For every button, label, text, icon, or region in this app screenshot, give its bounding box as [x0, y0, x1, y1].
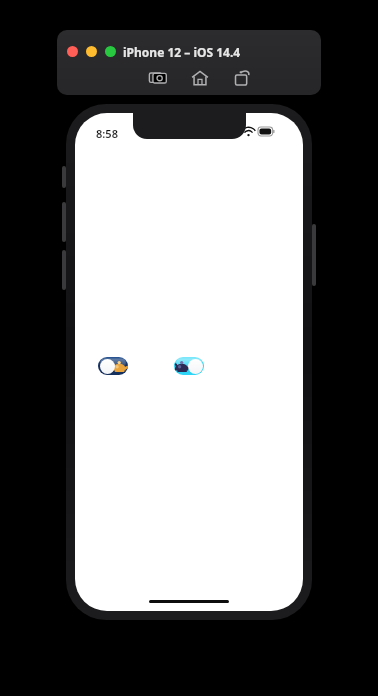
button[interactable]: Home: [189, 67, 211, 89]
button[interactable]: Rotate: [231, 67, 253, 89]
button[interactable]: Side button: [312, 224, 316, 286]
button[interactable]: Screenshot: [147, 67, 169, 89]
button[interactable]: Minimise: [86, 46, 97, 57]
button[interactable]: Volume down: [62, 250, 66, 290]
button[interactable]: Volume up: [62, 202, 66, 242]
button[interactable]: Zoom: [105, 46, 116, 57]
button[interactable]: Close: [67, 46, 78, 57]
staticText: iPhone 12 – iOS 14.4: [123, 44, 241, 60]
button[interactable]: Genie disabled: [98, 357, 128, 375]
button[interactable]: Ring silent switch: [62, 166, 66, 188]
staticText: 8:58: [96, 126, 118, 141]
button[interactable]: Genie enabled: [174, 357, 204, 375]
